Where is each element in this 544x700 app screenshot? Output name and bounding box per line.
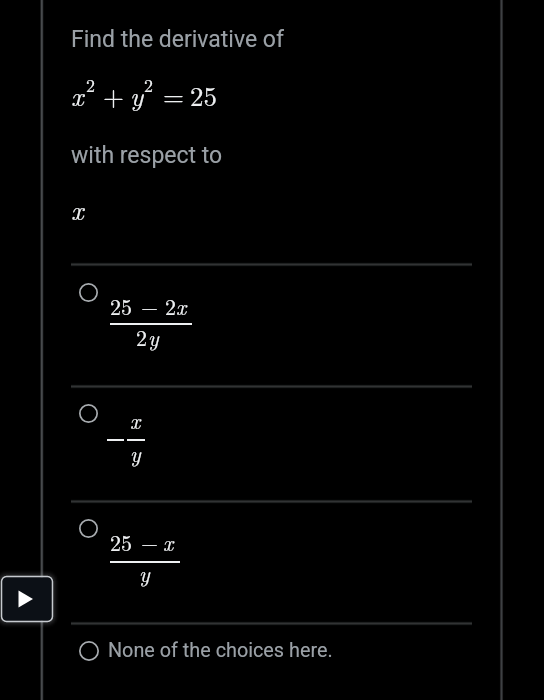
staticText: Find the derivative of [71,26,284,53]
staticText: x [71,190,84,228]
staticText: x [163,526,174,557]
button[interactable] [71,624,472,700]
button[interactable]: Play [1,576,53,622]
staticText: + [103,76,125,114]
staticText: 25 [110,526,133,557]
staticText: None of the choices here. [108,639,333,662]
staticText: 25 [110,290,133,321]
staticText: y [139,557,150,588]
staticText: − [141,290,159,321]
staticText: y [130,437,141,468]
button[interactable] [71,265,472,386]
staticText: y [148,321,159,352]
staticText: x [71,76,84,114]
staticText: = [163,76,185,114]
staticText: 2 [144,72,153,98]
staticText: 2 [86,72,95,98]
staticText: 2 [136,321,148,352]
staticText: 25 [190,76,217,114]
button[interactable] [71,387,472,501]
button[interactable] [71,502,472,623]
staticText: y [130,76,144,114]
staticText: 2 [165,290,177,321]
staticText: − [141,526,159,557]
staticText: with respect to [71,142,223,169]
staticText: x [176,290,187,321]
staticText: x [130,404,141,435]
